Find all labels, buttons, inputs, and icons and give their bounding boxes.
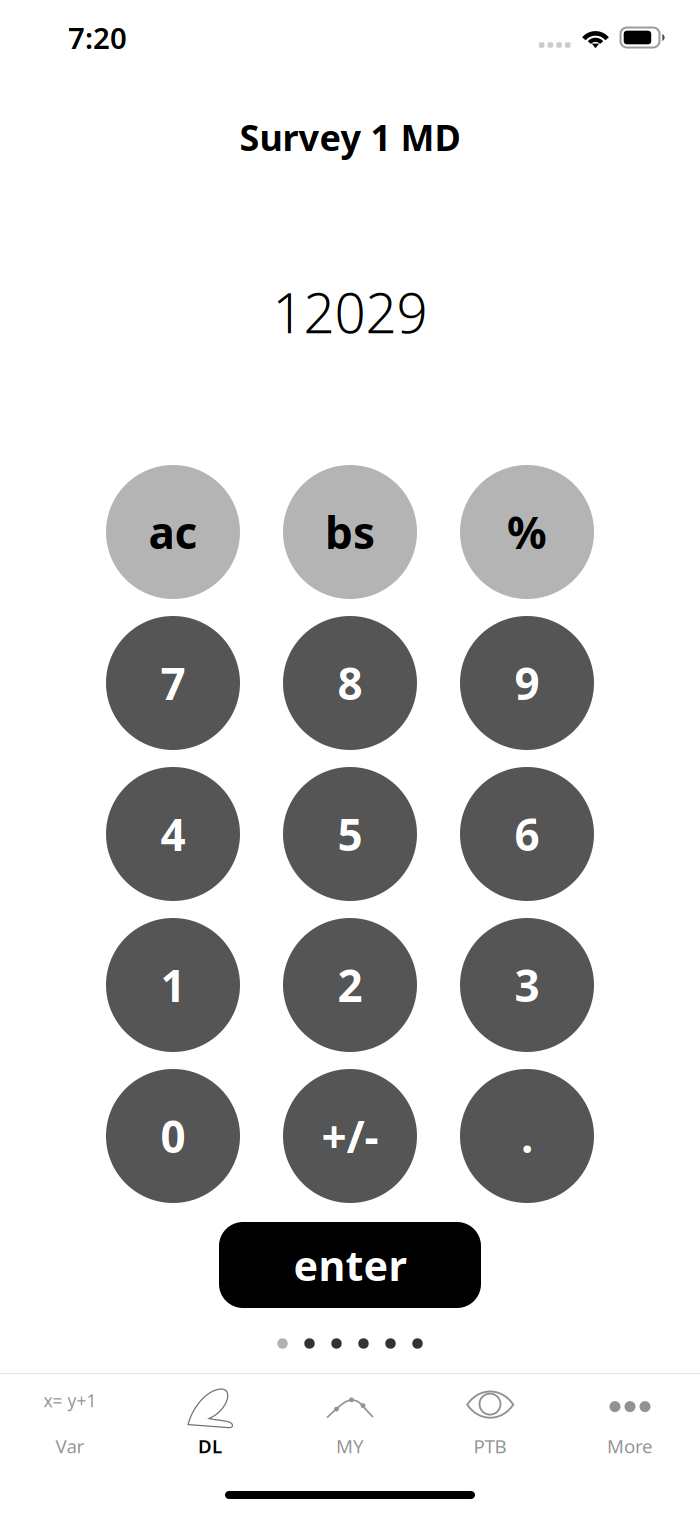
button[interactable]: More	[560, 1374, 700, 1464]
staticText: 0	[160, 1107, 185, 1165]
button[interactable]: 3	[460, 918, 594, 1052]
staticText: 1	[160, 956, 185, 1014]
button[interactable]: 5	[283, 767, 417, 901]
button[interactable]: 8	[283, 616, 417, 750]
staticText: enter	[293, 1238, 406, 1292]
staticText: PTB	[473, 1434, 506, 1458]
button[interactable]: 2	[283, 918, 417, 1052]
staticText: bs	[325, 503, 375, 561]
button[interactable]: DL	[140, 1374, 280, 1464]
button[interactable]: Page 1 of 6	[277, 1338, 423, 1349]
staticText: DL	[198, 1434, 222, 1458]
staticText: More	[607, 1434, 653, 1458]
button[interactable]: Percent	[460, 465, 594, 599]
button[interactable]: 0	[106, 1069, 240, 1203]
staticText: 7	[160, 654, 185, 712]
button[interactable]: PTB	[420, 1374, 560, 1464]
button[interactable]: 7	[106, 616, 240, 750]
staticText: 3	[514, 956, 539, 1014]
button[interactable]: 1	[106, 918, 240, 1052]
staticText: +/-	[321, 1107, 378, 1165]
staticText: 12029	[272, 276, 427, 348]
staticText: 8	[337, 654, 362, 712]
staticText: 4	[160, 805, 185, 863]
staticText: 9	[514, 654, 539, 712]
staticText: 7:20	[68, 18, 127, 57]
staticText: MY	[336, 1434, 364, 1458]
staticText: Survey 1 MD	[239, 113, 460, 161]
staticText: %	[507, 503, 547, 561]
button[interactable]: All clear	[106, 465, 240, 599]
button[interactable]: x= y+1	[0, 1374, 140, 1464]
button[interactable]: 4	[106, 767, 240, 901]
button[interactable]: Plus minus	[283, 1069, 417, 1203]
staticText: 6	[514, 805, 539, 863]
button[interactable]: enter	[219, 1222, 481, 1308]
button[interactable]: 9	[460, 616, 594, 750]
button[interactable]: 6	[460, 767, 594, 901]
staticText: x= y+1	[43, 1389, 96, 1412]
staticText: .	[521, 1107, 533, 1165]
button[interactable]: MY	[280, 1374, 420, 1464]
button[interactable]: Decimal point	[460, 1069, 594, 1203]
staticText: 5	[337, 805, 362, 863]
staticText: 2	[337, 956, 362, 1014]
staticText: ac	[148, 503, 197, 561]
button[interactable]: Backspace	[283, 465, 417, 599]
staticText: Var	[55, 1434, 84, 1458]
